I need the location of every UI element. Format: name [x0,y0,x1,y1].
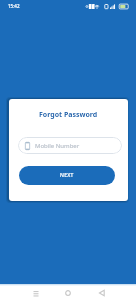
staticText: Mobile Number [35,142,80,150]
button[interactable]: Home [58,284,78,302]
button[interactable]: Mobile Number [18,137,122,154]
staticText: 15:42 [8,3,20,9]
staticText: NEXT [60,172,74,179]
staticText: Forgot Password [39,110,98,120]
button[interactable]: NEXT [19,166,115,185]
button[interactable]: Back [92,284,112,302]
button[interactable]: Recents [26,284,46,302]
